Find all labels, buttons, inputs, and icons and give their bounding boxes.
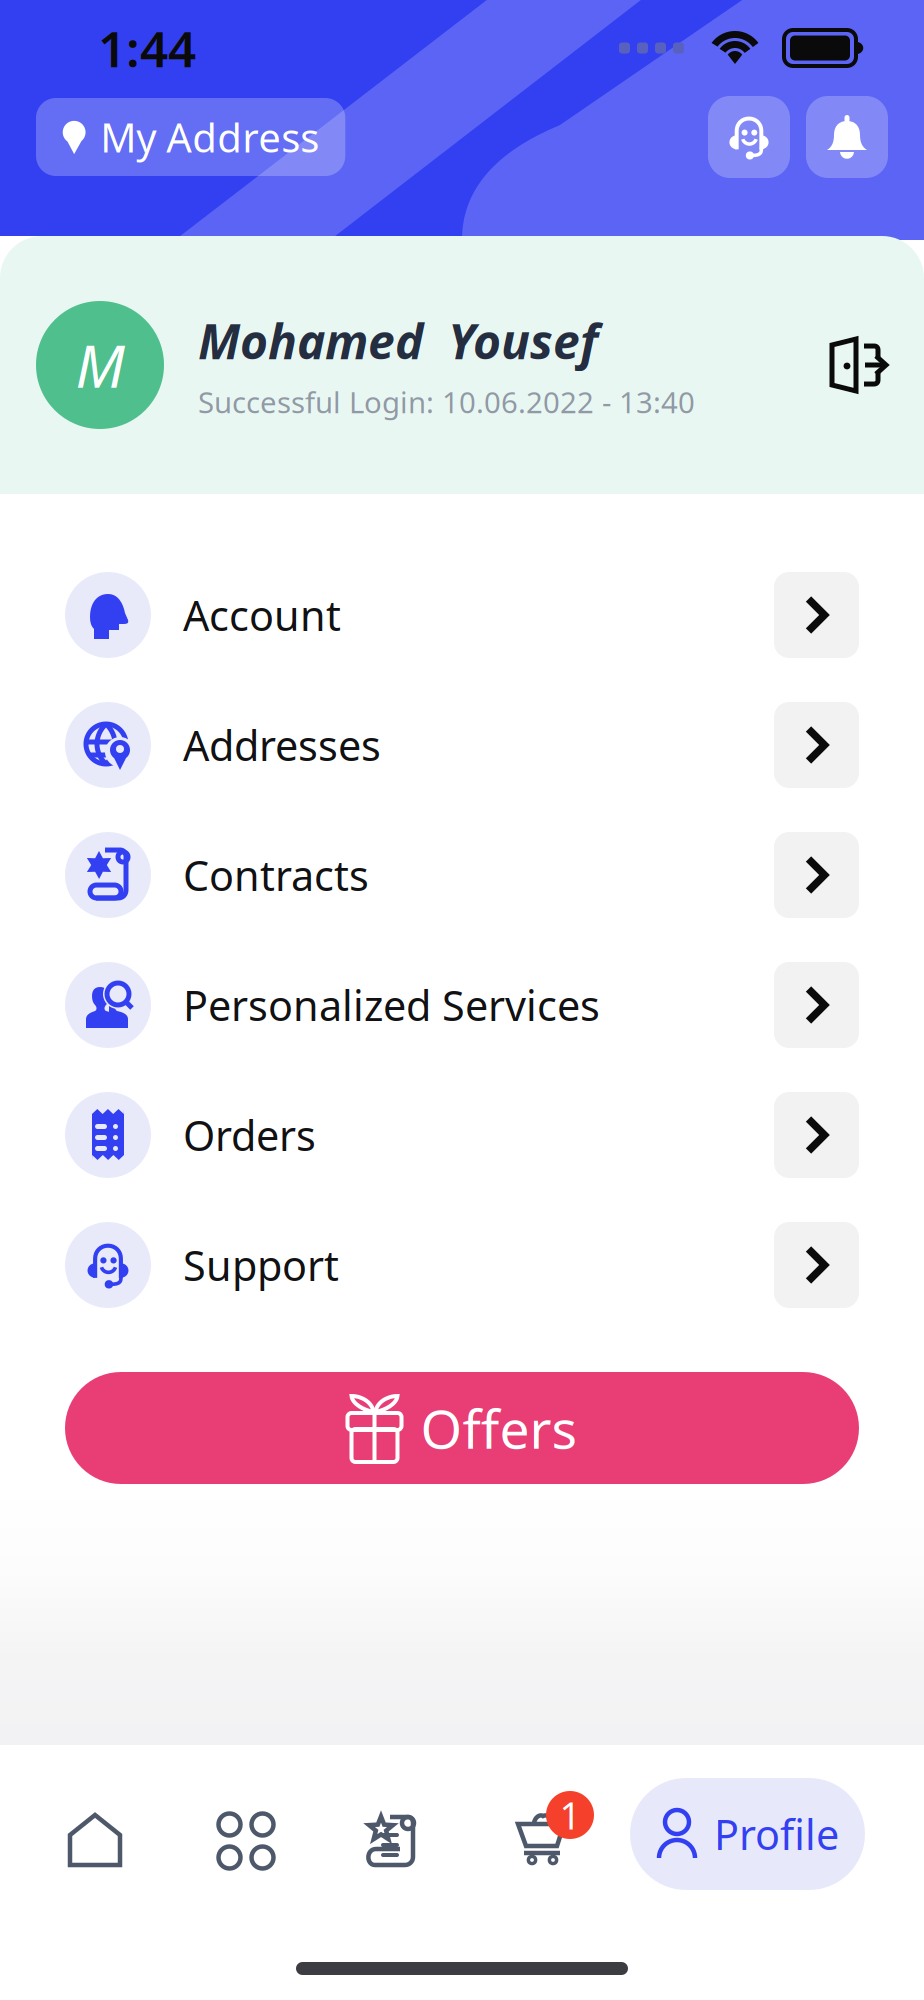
staticText: Addresses (183, 718, 381, 772)
staticText: Offers (420, 1393, 577, 1463)
staticText: Orders (183, 1108, 316, 1162)
button[interactable]: Profile (630, 1778, 865, 1890)
button[interactable]: Home (40, 1784, 150, 1896)
button[interactable]: Categories (191, 1785, 301, 1897)
button[interactable]: My Address (36, 98, 345, 176)
staticText: Mohamed Yousef (198, 309, 598, 372)
staticText: Account (183, 588, 341, 642)
button[interactable]: Contracts (0, 810, 924, 940)
button[interactable]: Personalized Services (0, 940, 924, 1070)
staticText: My Address (100, 110, 319, 163)
button[interactable]: Support (708, 96, 790, 178)
button[interactable]: Account (0, 550, 924, 680)
staticText: 1:44 (98, 15, 196, 81)
button[interactable]: Cart (497, 1777, 607, 1889)
staticText: Support (183, 1238, 339, 1292)
staticText: Profile (714, 1807, 839, 1861)
staticText: Contracts (183, 848, 369, 902)
staticText: Successful Login: 10.06.2022 - 13:40 (198, 382, 695, 421)
button[interactable]: Support (0, 1200, 924, 1330)
staticText: 1 (559, 1790, 580, 1840)
button[interactable]: Campaigns (337, 1785, 447, 1897)
button[interactable]: Log out (828, 335, 924, 395)
staticText: M (75, 326, 124, 404)
button[interactable]: Orders (0, 1070, 924, 1200)
button[interactable]: Notifications (806, 96, 888, 178)
staticText: Personalized Services (183, 978, 600, 1032)
button[interactable]: Addresses (0, 680, 924, 810)
button[interactable]: Offers (65, 1372, 859, 1484)
